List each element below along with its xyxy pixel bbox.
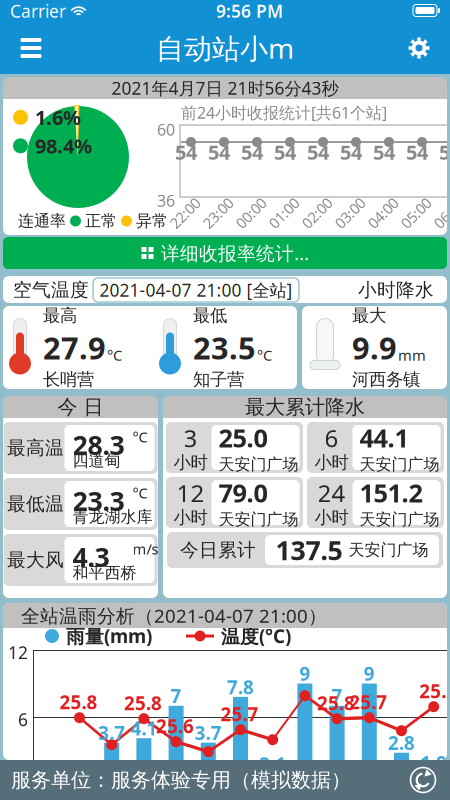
staticText: 小时 bbox=[314, 507, 348, 528]
staticText: 25.7 bbox=[349, 690, 387, 714]
staticText: 7.8 bbox=[227, 674, 254, 699]
staticText: mm bbox=[416, 412, 440, 430]
staticText: 最高 bbox=[43, 305, 77, 326]
staticText: 54 bbox=[307, 139, 329, 165]
staticText: 25.7 bbox=[220, 702, 258, 726]
staticText: 最大风 bbox=[7, 548, 64, 571]
staticText: 79.0 bbox=[218, 476, 267, 509]
staticText: 44.1 bbox=[359, 421, 408, 454]
staticText: 最低温 bbox=[7, 492, 64, 515]
staticText: 27.9 bbox=[43, 327, 106, 368]
staticText: 24 bbox=[317, 477, 345, 509]
staticText: 23.3 bbox=[72, 483, 124, 518]
staticText: 小时 bbox=[173, 507, 207, 528]
staticText: 7 bbox=[332, 683, 343, 708]
staticText: 23.5 bbox=[193, 327, 256, 368]
staticText: 最大 bbox=[352, 305, 386, 326]
staticText: 知子营 bbox=[193, 369, 244, 390]
staticText: 服务单位：服务体验专用（模拟数据） bbox=[11, 768, 351, 792]
staticText: 54 bbox=[340, 139, 362, 165]
staticText: m/s bbox=[132, 539, 158, 558]
staticText: 25.0 bbox=[218, 421, 267, 454]
staticText: 自动站小m bbox=[156, 29, 294, 67]
staticText: °C bbox=[107, 345, 122, 365]
staticText: 25.8 bbox=[59, 690, 97, 714]
staticText: 空气温度 bbox=[13, 278, 89, 301]
staticText: 四道甸 bbox=[72, 451, 120, 471]
staticText: °C bbox=[132, 483, 147, 502]
staticText: 01:00 bbox=[266, 203, 302, 223]
staticText: 3.7 bbox=[98, 720, 125, 745]
staticText: 12 bbox=[176, 477, 204, 509]
staticText: 54 bbox=[175, 139, 197, 165]
staticText: 54 bbox=[241, 139, 263, 165]
button[interactable]: Settings bbox=[397, 26, 441, 70]
staticText: 今日累计 bbox=[180, 538, 256, 561]
staticText: 4.1 bbox=[130, 716, 157, 741]
staticText: 54 bbox=[439, 139, 450, 165]
staticText: 54 bbox=[208, 139, 230, 165]
staticText: 1.9 bbox=[420, 750, 447, 775]
staticText: 04:00 bbox=[365, 203, 401, 223]
staticText: 2.8 bbox=[388, 730, 415, 755]
staticText: 54 bbox=[406, 139, 428, 165]
staticText: 天安门广场 bbox=[218, 509, 298, 529]
staticText: 正常 bbox=[85, 211, 117, 231]
staticText: 1.6% bbox=[35, 104, 81, 131]
staticText: 全站温雨分析（2021-04-07 21:00） bbox=[21, 603, 327, 628]
staticText: 雨量(mm) bbox=[66, 624, 152, 648]
button[interactable]: Menu bbox=[9, 26, 53, 70]
staticText: 151.2 bbox=[359, 476, 422, 509]
staticText: mm bbox=[398, 345, 426, 365]
staticText: 25. bbox=[419, 679, 446, 703]
staticText: 今 日 bbox=[57, 395, 103, 419]
staticText: 137.5 bbox=[275, 532, 342, 568]
staticText: 6 bbox=[324, 422, 338, 454]
staticText: 22:00 bbox=[167, 203, 203, 223]
staticText: 28.3 bbox=[72, 427, 124, 462]
staticText: 36 bbox=[157, 190, 175, 211]
staticText: 9 bbox=[299, 661, 310, 686]
staticText: Carrier bbox=[10, 0, 66, 22]
button[interactable]: Refresh bbox=[404, 761, 442, 799]
staticText: 最低 bbox=[193, 305, 227, 326]
staticText: 54 bbox=[274, 139, 296, 165]
staticText: 天安门广场 bbox=[218, 454, 298, 474]
staticText: 小时降水 bbox=[358, 278, 434, 301]
staticText: 天安门广场 bbox=[359, 454, 439, 474]
staticText: °C bbox=[257, 345, 272, 365]
staticText: 25.8 bbox=[124, 691, 162, 715]
staticText: °C bbox=[132, 427, 147, 446]
staticText: 9 bbox=[364, 661, 375, 686]
staticText: 06:00 bbox=[431, 203, 450, 223]
staticText: 河西务镇 bbox=[352, 369, 420, 390]
staticText: 2021年4月7日 21时56分43秒 bbox=[111, 76, 338, 99]
staticText: 12 bbox=[8, 641, 28, 664]
staticText: 天安门广场 bbox=[348, 540, 428, 560]
staticText: 温度(°C) bbox=[221, 624, 291, 648]
staticText: 05:00 bbox=[398, 203, 434, 223]
staticText: 天安门广场 bbox=[359, 509, 439, 529]
staticText: 异常 bbox=[136, 211, 168, 231]
staticText: 3.1 bbox=[259, 752, 286, 776]
staticText: 54 bbox=[373, 139, 395, 165]
staticText: 长哨营 bbox=[43, 369, 94, 390]
staticText: 详细收报率统计... bbox=[161, 241, 309, 265]
staticText: 青龙湖水库 bbox=[72, 507, 152, 527]
staticText: 02:00 bbox=[299, 203, 335, 223]
staticText: 03:00 bbox=[332, 203, 368, 223]
staticText: 9:56 PM bbox=[216, 0, 283, 22]
staticText: 98.4% bbox=[35, 133, 92, 159]
button[interactable]: 详细收报率统计... bbox=[3, 237, 447, 269]
staticText: 60 bbox=[157, 119, 175, 140]
staticText: 4.3 bbox=[72, 539, 109, 574]
staticText: 最大累计降水 bbox=[245, 395, 365, 419]
staticText: 小时 bbox=[314, 452, 348, 473]
staticText: 前24小时收报统计[共61个站] bbox=[181, 102, 387, 123]
staticText: 2021-04-07 21:00 [全站] bbox=[99, 278, 292, 301]
staticText: 小时 bbox=[173, 452, 207, 473]
staticText: 3.7 bbox=[195, 720, 222, 745]
staticText: 最高温 bbox=[7, 436, 64, 459]
staticText: 25.8 bbox=[317, 691, 355, 715]
staticText: 和平西桥 bbox=[72, 563, 136, 583]
